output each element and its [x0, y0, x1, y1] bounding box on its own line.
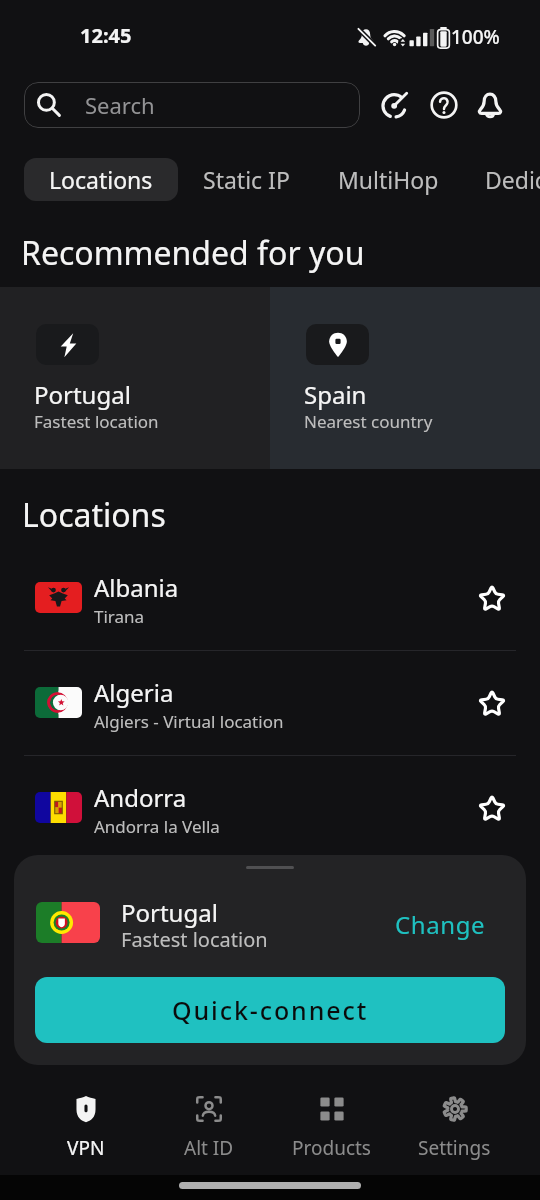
button[interactable]: Add to favourites	[468, 679, 516, 727]
staticText: Albania	[94, 571, 179, 604]
staticText: Portugal	[34, 378, 131, 411]
button[interactable]: Change	[383, 900, 498, 949]
button[interactable]: Static IP	[178, 158, 315, 201]
staticText: Alt ID	[184, 1135, 234, 1161]
button[interactable]: Products	[270, 1078, 393, 1178]
button[interactable]: Albania	[0, 545, 540, 650]
staticText: Algeria	[94, 676, 174, 709]
button[interactable]: Alt ID	[147, 1078, 270, 1178]
staticText: Quick-connect	[172, 993, 369, 1027]
staticText: MultiHop	[338, 164, 439, 195]
button[interactable]: VPN	[24, 1078, 147, 1178]
button[interactable]: Help	[422, 83, 466, 127]
staticText: 100%	[451, 24, 500, 50]
staticText: Andorra la Vella	[94, 815, 220, 838]
staticText: Fastest location	[34, 410, 159, 433]
button[interactable]: Algeria	[0, 650, 540, 755]
button[interactable]: Add to favourites	[468, 574, 516, 622]
button[interactable]: Notifications	[468, 83, 512, 127]
staticText: Locations	[22, 493, 166, 537]
staticText: VPN	[67, 1135, 105, 1161]
staticText: Spain	[304, 378, 367, 411]
staticText: Andorra	[94, 781, 187, 814]
staticText: Change	[395, 908, 486, 941]
button[interactable]: Add to favourites	[468, 784, 516, 832]
button[interactable]: Settings	[393, 1078, 516, 1178]
button[interactable]: MultiHop	[315, 158, 462, 201]
staticText: Nearest country	[304, 410, 433, 433]
staticText: Recommended for you	[21, 231, 365, 275]
staticText: Settings	[418, 1135, 491, 1161]
button[interactable]: Speed test	[373, 83, 417, 127]
staticText: Algiers - Virtual location	[94, 710, 284, 733]
staticText: 12:45	[80, 22, 132, 49]
staticText: Portugal	[121, 896, 218, 929]
button[interactable]: Search	[24, 82, 360, 128]
staticText: Fastest location	[121, 926, 268, 953]
button[interactable]: Dedicated IP	[462, 158, 540, 201]
button[interactable]: Locations	[24, 158, 178, 201]
staticText: Locations	[49, 164, 153, 195]
staticText: Static IP	[203, 164, 290, 195]
staticText: Products	[292, 1135, 371, 1161]
button[interactable]: Portugal	[0, 287, 270, 469]
staticText: Tirana	[94, 605, 145, 628]
staticText: Search	[85, 90, 155, 120]
staticText: Dedicated IP	[485, 164, 540, 195]
button[interactable]: Spain	[270, 287, 540, 469]
button[interactable]: Quick-connect	[35, 977, 505, 1043]
button[interactable]: Andorra	[0, 755, 540, 860]
